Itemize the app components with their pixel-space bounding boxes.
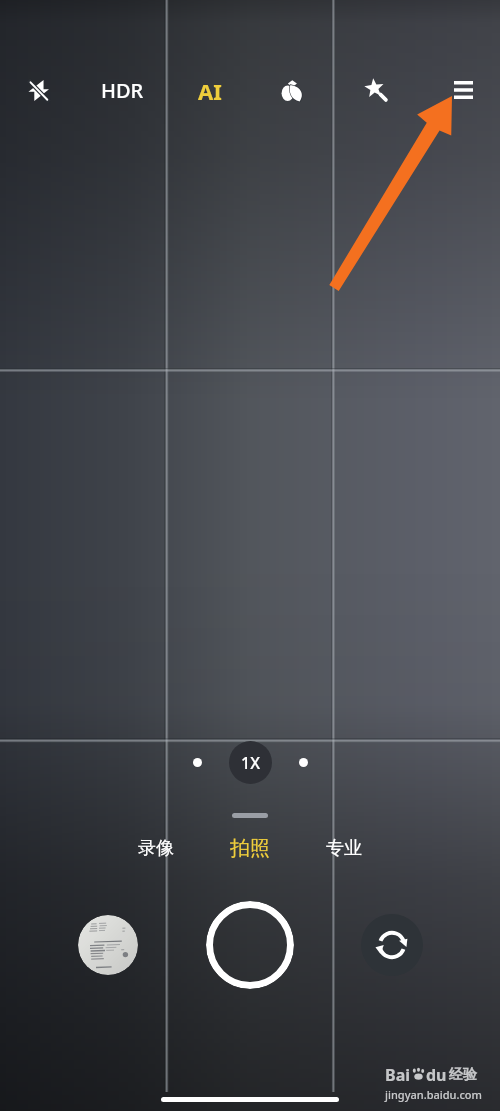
button[interactable]: More settings — [435, 64, 491, 116]
staticText: 专业 — [326, 837, 362, 860]
button[interactable]: 录像 — [114, 828, 198, 868]
button[interactable]: Shutter — [206, 901, 294, 989]
staticText: HDR — [101, 77, 144, 104]
button[interactable]: 1X — [229, 741, 272, 784]
staticText: Bai — [385, 1064, 411, 1086]
staticText: 经验 — [449, 1066, 477, 1084]
button[interactable]: AI — [179, 65, 241, 117]
button[interactable]: Switch camera — [361, 914, 423, 976]
button[interactable]: Gallery — [78, 915, 138, 975]
button[interactable]: Zoom in — [289, 748, 317, 776]
staticText: 拍照 — [230, 836, 270, 861]
staticText: jingyan.baidu.com — [385, 1087, 482, 1102]
button[interactable]: 拍照 — [208, 828, 292, 868]
staticText: AI — [198, 76, 222, 106]
button[interactable]: Zoom out — [183, 748, 211, 776]
staticText: du — [426, 1064, 447, 1086]
staticText: 1X — [241, 752, 260, 774]
button[interactable]: 专业 — [302, 828, 386, 868]
button[interactable]: Flash off — [10, 64, 66, 116]
button[interactable]: Beauty — [348, 64, 404, 116]
staticText: 录像 — [138, 837, 174, 860]
button[interactable]: HDR — [85, 64, 159, 116]
button[interactable]: Filters — [264, 64, 320, 116]
